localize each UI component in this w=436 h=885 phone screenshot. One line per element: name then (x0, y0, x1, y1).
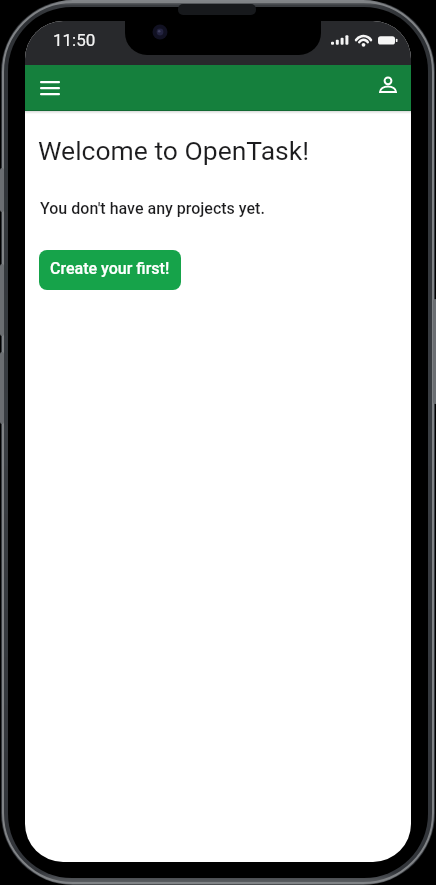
staticText: Welcome to OpenTask! (38, 135, 310, 166)
staticText: Create your first! (50, 259, 170, 278)
button[interactable] (366, 65, 410, 110)
staticText: You don't have any projects yet. (40, 199, 265, 218)
staticText: 11:50 (53, 30, 96, 50)
button[interactable] (28, 65, 72, 110)
button[interactable]: Create your first! (39, 250, 181, 290)
